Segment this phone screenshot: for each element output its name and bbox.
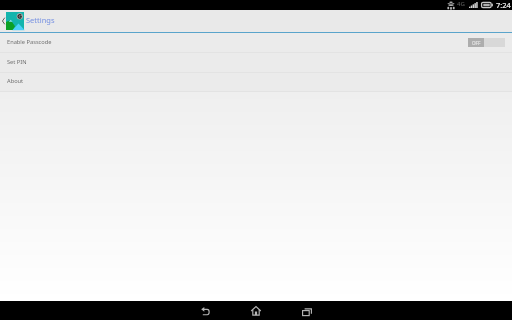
staticText: Enable Passcode xyxy=(7,38,52,46)
staticText: Set PIN xyxy=(7,58,27,66)
button[interactable]: Back xyxy=(195,301,215,320)
button[interactable]: Recent apps xyxy=(297,301,317,320)
button[interactable]: About xyxy=(0,73,512,91)
staticText: Settings xyxy=(26,15,55,25)
button[interactable]: Back xyxy=(0,10,6,32)
staticText: OFF xyxy=(472,40,481,46)
staticText: 4G xyxy=(457,0,465,8)
button[interactable]: OFF xyxy=(468,38,505,47)
button[interactable]: Set PIN xyxy=(0,53,512,72)
staticText: 7:24 xyxy=(496,0,511,10)
staticText: About xyxy=(7,77,24,85)
button[interactable]: Home xyxy=(246,301,266,320)
button[interactable]: Enable Passcode xyxy=(0,33,512,52)
